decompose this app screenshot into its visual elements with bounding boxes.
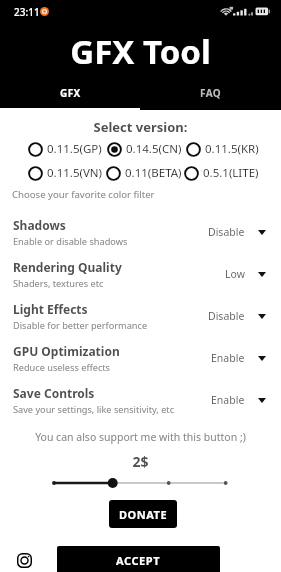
staticText: 0.14.5(CN) [126,141,182,157]
staticText: Select version: [0,118,281,136]
staticText: 2$ [0,452,281,471]
staticText: Enable [211,393,245,407]
staticText: Disable [208,225,245,239]
staticText: GFX [60,86,81,100]
button[interactable]: DONATE [109,500,177,528]
button[interactable]: GPU Optimization [0,337,281,379]
button[interactable]: 0.11(BETA) [106,162,182,184]
button[interactable]: 0.11.5(KR) [186,138,259,160]
staticText: Save Controls [13,385,95,401]
staticText: You can also support me with this button… [0,430,281,444]
staticText: 0.11(BETA) [125,165,182,181]
staticText: Reduce useless effects [13,361,111,374]
staticText: Shaders, textures etc [13,277,104,290]
staticText: Enable [211,351,245,365]
button[interactable]: GFX [0,80,140,106]
staticText: Enable or disable shadows [13,235,128,248]
button[interactable]: Rendering Quality [0,253,281,295]
button[interactable]: 0.5.1(LITE) [184,162,259,184]
button[interactable]: 0.11.5(GP) [28,138,102,160]
button[interactable]: 0.11.5(VN) [28,162,103,184]
button[interactable]: Shadows [0,211,281,253]
button[interactable]: ACCEPT [57,546,220,572]
staticText: Choose your favorite color filter [12,188,155,201]
staticText: GPU Optimization [13,343,120,359]
staticText: Light Effects [13,301,88,317]
staticText: GFX Tool [0,29,281,74]
staticText: 23:11 [14,5,40,19]
staticText: DONATE [119,507,168,522]
button[interactable]: Instagram [11,547,37,572]
staticText: ACCEPT [116,553,161,568]
staticText: Shadows [13,217,66,233]
staticText: Rendering Quality [13,259,122,275]
staticText: 0.5.1(LITE) [203,165,259,181]
staticText: Save your settings, like sensitivity, et… [13,403,175,416]
button[interactable]: 0.14.5(CN) [107,138,182,160]
staticText: Low [225,267,245,281]
button[interactable]: Light Effects [0,295,281,337]
staticText: 0.11.5(GP) [47,141,102,157]
staticText: Disable for better performance [13,319,148,332]
staticText: Disable [208,309,245,323]
button[interactable]: Save Controls [0,379,281,421]
button[interactable]: FAQ [140,80,281,106]
staticText: FAQ [200,86,222,100]
staticText: 0.11.5(VN) [47,165,103,181]
staticText: 0.11.5(KR) [205,141,259,157]
